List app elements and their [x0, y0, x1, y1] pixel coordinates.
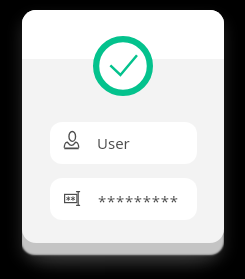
staticText: *********: [98, 191, 179, 211]
button[interactable]: User: [50, 122, 197, 164]
button[interactable]: *********: [50, 178, 197, 220]
staticText: User: [97, 133, 130, 153]
